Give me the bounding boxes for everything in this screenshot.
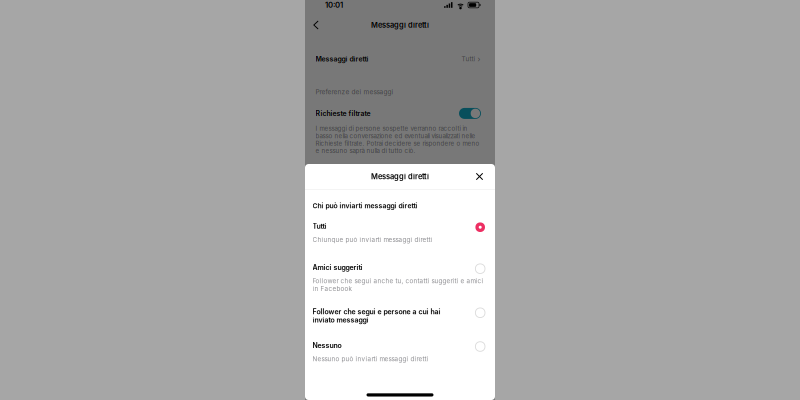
staticText: Preferenze dei messaggi [315, 88, 393, 96]
staticText: Richieste filtrate [315, 109, 370, 118]
button[interactable]: Messaggi diretti [305, 53, 495, 65]
button[interactable]: Nessuno [305, 341, 495, 373]
button[interactable]: Indietro [309, 16, 323, 34]
staticText: Messaggi diretti [371, 20, 429, 29]
staticText: Nessuno può inviarti messaggi diretti [312, 355, 428, 363]
staticText: I messaggi di persone sospette verranno … [315, 125, 479, 155]
button[interactable]: Chiudi [471, 168, 487, 184]
staticText: Amici suggeriti [312, 263, 362, 272]
staticText: Messaggi diretti [371, 172, 429, 181]
staticText: Follower che segui e persone a cui hai i… [312, 307, 440, 324]
staticText: Tutti [461, 55, 475, 63]
button[interactable]: Amici suggeriti [305, 263, 495, 307]
staticText: Nessuno [312, 341, 341, 350]
button[interactable]: Tutti [305, 222, 495, 263]
button[interactable]: Follower che segui e persone a cui hai i… [305, 307, 495, 341]
staticText: › [475, 54, 480, 63]
staticText: Follower che segui anche tu, contatti su… [312, 277, 483, 292]
staticText: Chi può inviarti messaggi diretti [312, 202, 417, 210]
staticText: Messaggi diretti [315, 55, 368, 63]
staticText: Chiunque può inviarti messaggi diretti [312, 236, 432, 243]
staticText: 10:01 [325, 0, 343, 10]
staticText: Tutti [312, 222, 326, 230]
button[interactable]: Richieste filtrate [305, 108, 495, 119]
